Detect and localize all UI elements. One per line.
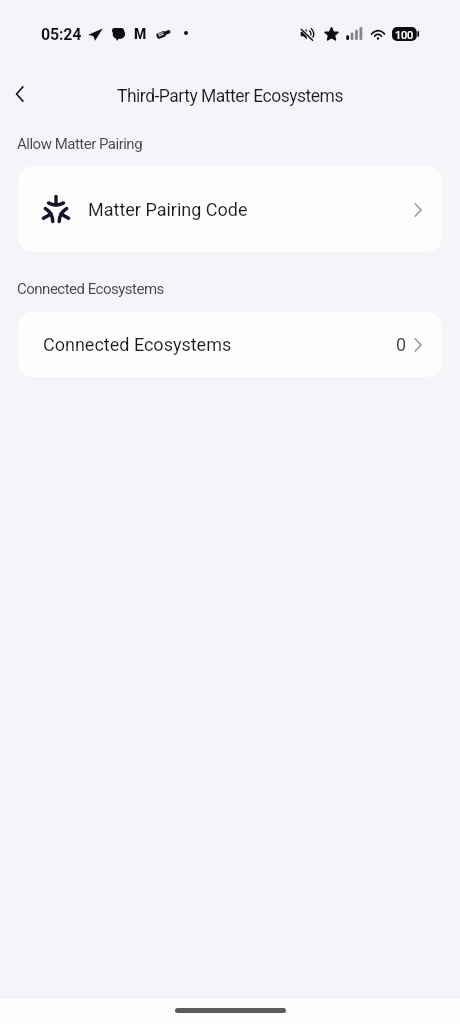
staticText: 05:24 [41,25,82,44]
staticText: 0 [396,334,407,355]
staticText: Connected Ecosystems [43,334,232,355]
staticText: 100 [395,29,414,42]
staticText: Third-Party Matter Ecosystems [0,86,460,107]
staticText: Connected Ecosystems [17,280,164,298]
button[interactable]: Back [0,74,40,114]
button[interactable]: Matter Pairing Code [18,166,442,252]
button[interactable]: Connected Ecosystems [18,312,442,377]
staticText: Matter Pairing Code [88,199,248,220]
staticText: Allow Matter Pairing [17,135,143,153]
staticText: M [134,26,147,42]
